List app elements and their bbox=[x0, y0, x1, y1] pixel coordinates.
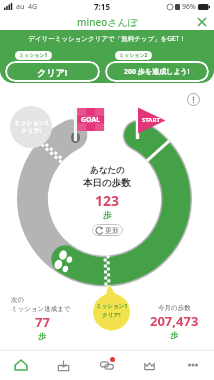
staticText: START bbox=[142, 116, 160, 124]
staticText: GOAL bbox=[81, 115, 101, 125]
staticText: 本日の歩数 bbox=[83, 177, 131, 189]
staticText: ミッション1 bbox=[96, 302, 128, 310]
staticText: 次の bbox=[11, 296, 25, 304]
staticText: mineoさんぽ bbox=[77, 15, 138, 29]
staticText: ミッション1 bbox=[19, 52, 48, 59]
staticText: クリア! bbox=[21, 127, 42, 135]
button[interactable]: Home bbox=[0, 350, 42, 380]
staticText: 4G bbox=[28, 2, 38, 12]
button[interactable]: Coupons bbox=[42, 350, 85, 380]
staticText: クリア! bbox=[102, 311, 121, 319]
staticText: ミッション2 bbox=[119, 52, 148, 59]
staticText: 今月の歩数 bbox=[158, 304, 191, 312]
staticText: 200 歩を達成しよう! bbox=[124, 67, 190, 77]
button[interactable]: Information bbox=[185, 91, 201, 107]
button[interactable]: 200 歩を達成しよう! bbox=[105, 51, 209, 82]
button[interactable]: Chat bbox=[85, 350, 128, 380]
staticText: あなたの bbox=[90, 165, 125, 176]
button[interactable]: Close bbox=[195, 15, 209, 29]
staticText: 207,473 bbox=[150, 312, 199, 330]
staticText: 123 bbox=[95, 191, 120, 210]
button[interactable]: Rewards bbox=[128, 350, 171, 380]
staticText: 77 bbox=[35, 313, 50, 331]
staticText: 歩 bbox=[38, 331, 46, 341]
staticText: 更新 bbox=[105, 226, 119, 235]
staticText: ミッション2 bbox=[14, 119, 49, 127]
staticText: 7:15 bbox=[94, 1, 110, 12]
staticText: 96% bbox=[182, 2, 196, 12]
button[interactable]: 更新 bbox=[92, 224, 123, 236]
staticText: クリア! bbox=[37, 66, 68, 78]
staticText: デイリーミッションクリアで「無料チップ」をGET！ bbox=[0, 34, 214, 43]
button[interactable]: クリア! bbox=[5, 51, 100, 82]
button[interactable]: More bbox=[171, 350, 214, 380]
staticText: 歩 bbox=[103, 210, 112, 221]
staticText: ミッション達成まで bbox=[11, 305, 71, 313]
staticText: au bbox=[16, 2, 25, 12]
staticText: 歩 bbox=[170, 330, 178, 340]
